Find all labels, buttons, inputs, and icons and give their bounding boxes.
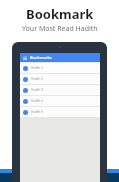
staticText: Hadith 4 xyxy=(31,99,43,103)
button[interactable]: Hadith 2 xyxy=(20,74,100,84)
button[interactable]: Hadith 4 xyxy=(20,96,100,106)
staticText: Bookmarks xyxy=(30,55,52,60)
staticText: Hadith 2 xyxy=(31,77,43,81)
staticText: Bookmark xyxy=(26,5,94,23)
staticText: Hadith 5 xyxy=(31,110,43,114)
button[interactable]: Open navigation menu xyxy=(22,55,28,61)
staticText: Hadith 3 xyxy=(31,88,43,92)
button[interactable]: Hadith 3 xyxy=(20,85,100,95)
button[interactable]: Hadith 5 xyxy=(20,107,100,117)
button[interactable]: Hadith 1 xyxy=(20,63,100,73)
staticText: Hadith 1 xyxy=(31,66,43,70)
staticText: Your Most Read Hadith xyxy=(22,24,98,34)
